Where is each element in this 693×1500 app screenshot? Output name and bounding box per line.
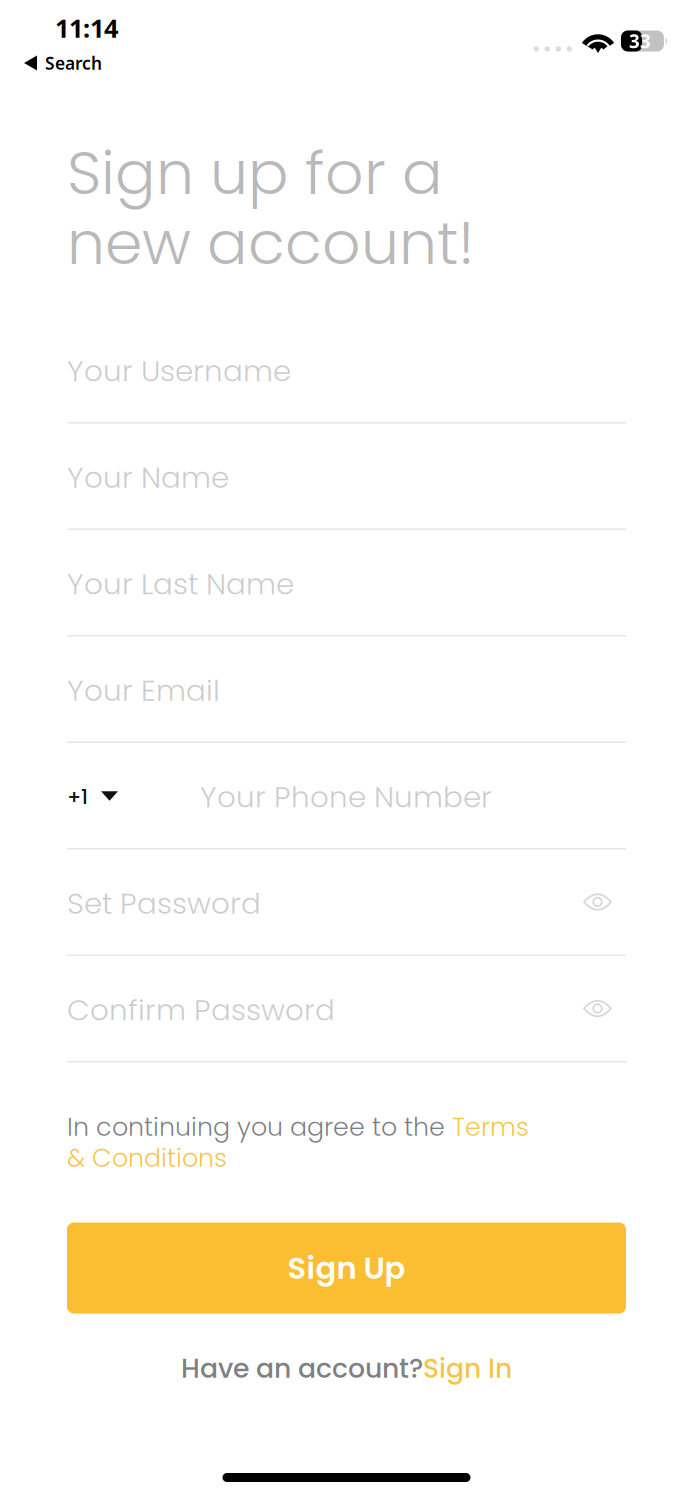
button[interactable]: Terms: [452, 1109, 529, 1145]
staticText: Your Name: [67, 457, 229, 498]
button[interactable]: +1: [67, 743, 200, 848]
staticText: & Conditions: [67, 1140, 227, 1176]
button[interactable]: Search: [0, 48, 693, 78]
staticText: Your Last Name: [67, 563, 294, 605]
staticText: Set Password: [67, 883, 261, 924]
button[interactable]: Show password: [560, 871, 626, 932]
button[interactable]: Sign Up: [67, 1222, 626, 1313]
staticText: 33: [629, 29, 651, 53]
staticText: Confirm Password: [67, 989, 335, 1031]
button[interactable]: & Conditions: [67, 1140, 227, 1176]
staticText: +1: [67, 783, 88, 811]
button[interactable]: Have an account?: [181, 1348, 512, 1388]
staticText: Have an account?: [181, 1350, 423, 1387]
staticText: Search: [45, 51, 102, 74]
button[interactable]: Show password: [560, 978, 626, 1039]
staticText: In continuing you agree to the: [67, 1109, 452, 1145]
staticText: Sign In: [423, 1350, 512, 1387]
staticText: Your Email: [67, 670, 220, 711]
staticText: Sign up for a: [67, 131, 443, 215]
staticText: Terms: [452, 1109, 529, 1145]
staticText: new account!: [67, 201, 475, 285]
staticText: Your Username: [67, 350, 291, 392]
staticText: Sign Up: [287, 1246, 405, 1289]
staticText: Your Phone Number: [200, 776, 492, 818]
staticText: 11:14: [55, 11, 118, 45]
